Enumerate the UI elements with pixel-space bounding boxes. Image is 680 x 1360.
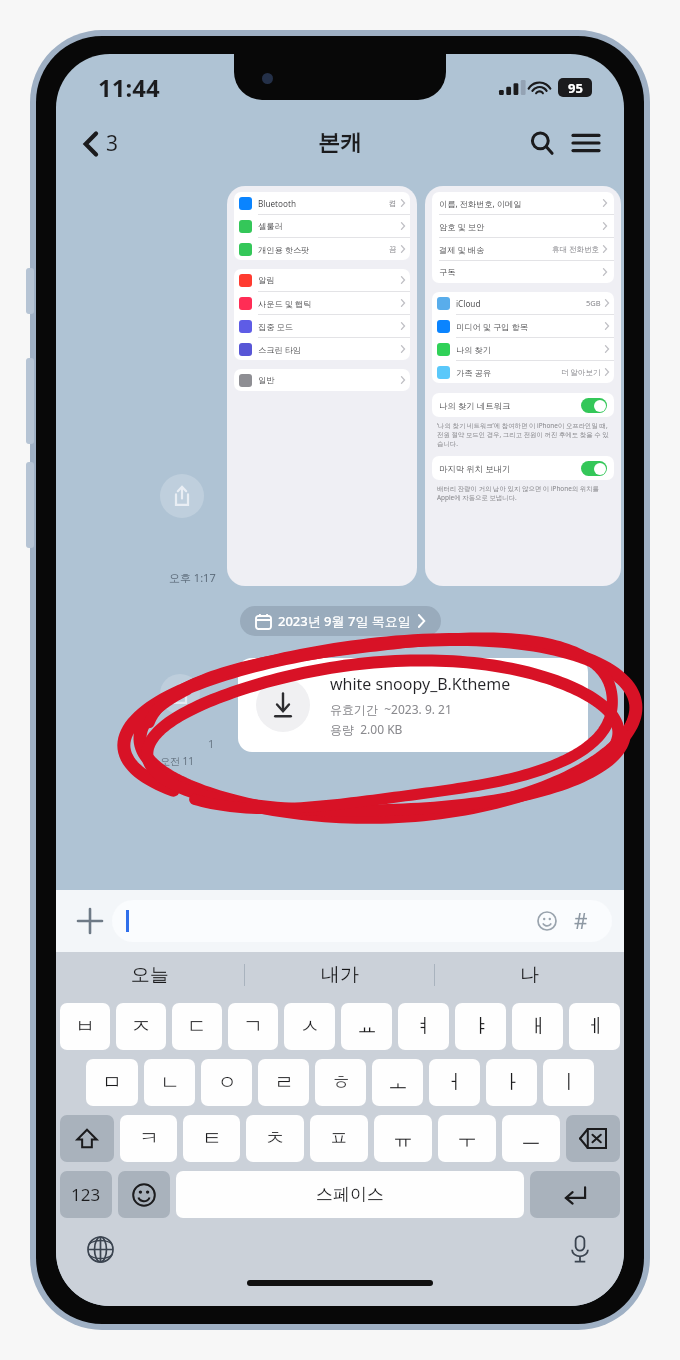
staticText: ㄱ bbox=[243, 1014, 263, 1039]
staticText: 5GB bbox=[586, 298, 601, 308]
button[interactable]: Change language bbox=[78, 1227, 122, 1271]
button[interactable]: 나 bbox=[435, 952, 624, 998]
button[interactable]: ㅇ bbox=[201, 1059, 252, 1106]
button[interactable]: Emoji bbox=[530, 904, 564, 938]
staticText: ㅓ bbox=[445, 1070, 465, 1095]
button[interactable]: Bluetooth bbox=[227, 186, 417, 586]
button[interactable]: ㅊ bbox=[246, 1115, 304, 1162]
staticText: 유효기간 ~2023. 9. 21 bbox=[330, 701, 452, 717]
button[interactable]: Backspace bbox=[566, 1115, 620, 1162]
staticText: ㄹ bbox=[274, 1070, 294, 1095]
staticText: 셀룰러 bbox=[258, 221, 283, 231]
staticText: 알림 bbox=[258, 275, 275, 285]
button[interactable]: Share file bbox=[160, 674, 200, 714]
staticText: ㅎ bbox=[331, 1070, 351, 1095]
staticText: ㅐ bbox=[528, 1014, 548, 1039]
staticText: 나의 찾기 bbox=[456, 344, 491, 355]
button[interactable]: ㅛ bbox=[341, 1003, 392, 1050]
staticText: ㅅ bbox=[300, 1014, 320, 1039]
button[interactable]: ㅗ bbox=[372, 1059, 423, 1106]
button[interactable]: ㅠ bbox=[374, 1115, 432, 1162]
staticText: 일반 bbox=[258, 375, 275, 385]
button[interactable]: ㅡ bbox=[502, 1115, 560, 1162]
button[interactable]: ㅈ bbox=[116, 1003, 166, 1050]
staticText: 켬 bbox=[389, 199, 397, 208]
button[interactable]: ㅕ bbox=[398, 1003, 449, 1050]
staticText: ㅁ bbox=[102, 1070, 122, 1095]
staticText: 사운드 및 햅틱 bbox=[258, 298, 312, 309]
button[interactable]: ㅜ bbox=[438, 1115, 496, 1162]
button[interactable]: Add attachment bbox=[68, 899, 112, 943]
staticText: ‘나의 찾기 네트워크’에 참여하면 이 iPhone이 오프라인일 때, 전원… bbox=[437, 421, 609, 448]
button[interactable]: 2023년 9월 7일 목요일 bbox=[240, 606, 441, 636]
button[interactable]: ㅓ bbox=[429, 1059, 480, 1106]
button[interactable]: 이름, 전화번호, 이메일 bbox=[425, 186, 621, 586]
staticText: ㅠ bbox=[393, 1126, 413, 1151]
staticText: 휴대 전화번호 bbox=[552, 244, 599, 254]
button[interactable]: ㅌ bbox=[183, 1115, 240, 1162]
button[interactable]: 오늘 bbox=[56, 952, 244, 998]
staticText: ㅇ bbox=[217, 1070, 237, 1095]
staticText: 내가 bbox=[321, 963, 359, 987]
staticText: 나의 찾기 네트워크 bbox=[439, 400, 511, 411]
staticText: 2023년 9월 7일 목요일 bbox=[278, 612, 411, 630]
button[interactable]: 스페이스 bbox=[176, 1171, 524, 1218]
staticText: 이름, 전화번호, 이메일 bbox=[439, 198, 522, 209]
staticText: 끔 bbox=[389, 245, 397, 254]
button[interactable]: ㅂ bbox=[60, 1003, 110, 1050]
staticText: ㅛ bbox=[357, 1014, 377, 1039]
button[interactable]: Return bbox=[530, 1171, 620, 1218]
staticText: ㅊ bbox=[265, 1126, 285, 1151]
button[interactable]: ㄹ bbox=[258, 1059, 309, 1106]
button[interactable]: 3 bbox=[74, 123, 129, 164]
button[interactable]: Emoji bbox=[112, 900, 612, 942]
staticText: white snoopy_B.Ktheme bbox=[330, 673, 511, 695]
button[interactable]: Share bbox=[160, 474, 204, 518]
button[interactable]: Emoji keyboard bbox=[118, 1171, 170, 1218]
button[interactable]: ㅑ bbox=[455, 1003, 506, 1050]
button[interactable]: ㅐ bbox=[512, 1003, 563, 1050]
staticText: ㅣ bbox=[559, 1070, 579, 1095]
staticText: 오늘 bbox=[131, 963, 169, 987]
button[interactable]: 123 bbox=[60, 1171, 112, 1218]
button[interactable]: Shift bbox=[60, 1115, 114, 1162]
staticText: ㅈ bbox=[131, 1014, 151, 1039]
button[interactable]: Dictation bbox=[558, 1227, 602, 1271]
staticText: ㅗ bbox=[388, 1070, 408, 1095]
button[interactable]: Menu bbox=[564, 121, 608, 165]
button[interactable]: 내가 bbox=[245, 952, 434, 998]
staticText: ㅏ bbox=[502, 1070, 522, 1095]
button[interactable]: ㄱ bbox=[228, 1003, 278, 1050]
staticText: 미디어 및 구입 항목 bbox=[456, 321, 528, 332]
button[interactable]: Search bbox=[520, 121, 564, 165]
staticText: ㅍ bbox=[329, 1126, 349, 1151]
staticText: 11:44 bbox=[98, 71, 160, 104]
button[interactable]: Hashtag bbox=[564, 904, 598, 938]
staticText: ㅌ bbox=[202, 1126, 222, 1151]
button[interactable]: ㄴ bbox=[144, 1059, 195, 1106]
button[interactable]: ㅣ bbox=[543, 1059, 594, 1106]
staticText: 1 bbox=[208, 736, 215, 751]
button[interactable]: ㄷ bbox=[172, 1003, 222, 1050]
button[interactable]: ㅁ bbox=[86, 1059, 138, 1106]
staticText: 배터리 잔량이 거의 남아 있지 않으면 이 iPhone의 위치를 Apple… bbox=[437, 484, 609, 502]
button[interactable]: ㅍ bbox=[310, 1115, 368, 1162]
staticText: ㄴ bbox=[160, 1070, 180, 1095]
staticText: 3 bbox=[106, 129, 119, 158]
staticText: 오전 11 bbox=[160, 754, 195, 768]
staticText: # bbox=[574, 907, 588, 936]
staticText: 개인용 핫스팟 bbox=[258, 244, 310, 255]
button[interactable]: white snoopy_B.Ktheme bbox=[238, 658, 588, 752]
button[interactable]: ㅋ bbox=[120, 1115, 177, 1162]
staticText: ㅋ bbox=[139, 1126, 159, 1151]
staticText: 오후 1:17 bbox=[169, 570, 216, 585]
staticText: ㄷ bbox=[187, 1014, 207, 1039]
button[interactable]: ㅏ bbox=[486, 1059, 537, 1106]
button[interactable]: ㅅ bbox=[284, 1003, 335, 1050]
button[interactable]: ㅔ bbox=[569, 1003, 620, 1050]
staticText: 스크린 타임 bbox=[258, 344, 302, 355]
button[interactable]: ㅎ bbox=[315, 1059, 366, 1106]
staticText: Bluetooth bbox=[258, 198, 296, 209]
staticText: ㅂ bbox=[75, 1014, 95, 1039]
staticText: ㅡ bbox=[521, 1126, 541, 1151]
